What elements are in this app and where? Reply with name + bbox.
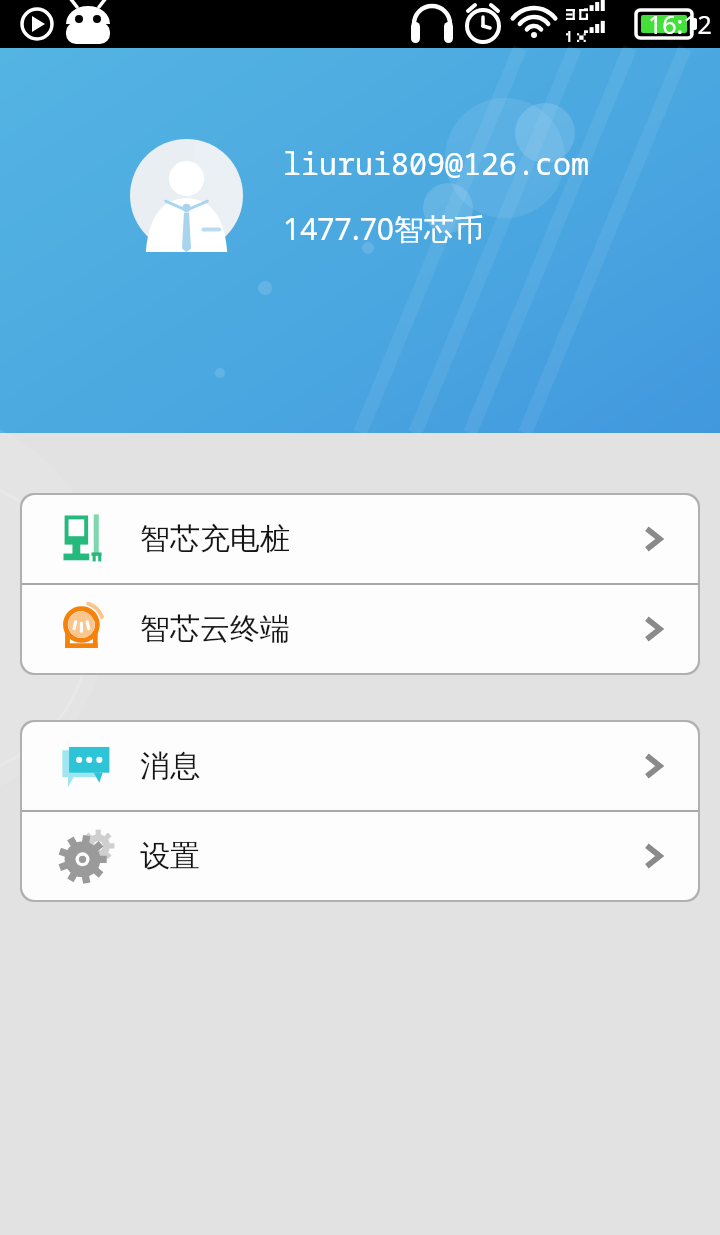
staticText: 设置 bbox=[140, 837, 200, 875]
other: 打开 智芯云终端 bbox=[636, 612, 670, 646]
staticText: 智芯充电桩 bbox=[140, 520, 290, 558]
staticText: 消息 bbox=[140, 747, 200, 785]
button[interactable]: 智芯充电桩 bbox=[22, 495, 698, 583]
other: 打开 消息 bbox=[636, 749, 670, 783]
other: 打开 设置 bbox=[636, 839, 670, 873]
button[interactable]: 消息 bbox=[22, 722, 698, 810]
button[interactable]: 智芯云终端 bbox=[22, 585, 698, 673]
staticText: 智芯云终端 bbox=[140, 610, 290, 648]
staticText: 1477.70智芯币 bbox=[283, 208, 484, 249]
other: 打开 智芯充电桩 bbox=[636, 522, 670, 556]
staticText: 16:12 bbox=[648, 7, 712, 41]
button[interactable]: 设置 bbox=[22, 812, 698, 900]
staticText: liurui809@126.com bbox=[283, 143, 589, 184]
